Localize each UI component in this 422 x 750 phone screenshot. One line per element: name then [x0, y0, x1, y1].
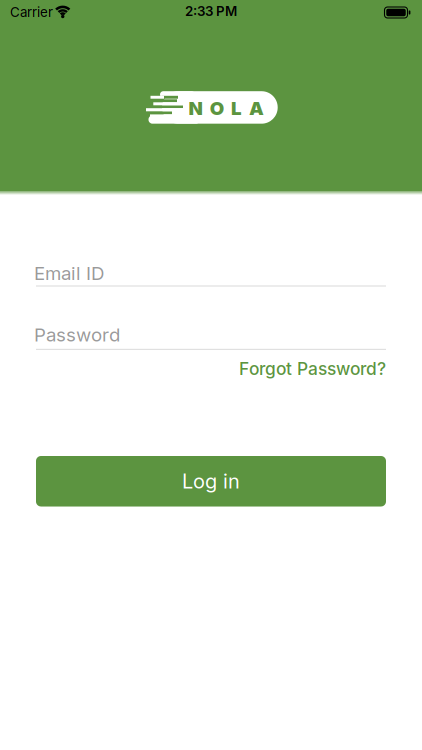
staticText: Email ID — [34, 262, 104, 284]
staticText: N — [188, 97, 202, 119]
staticText: Forgot Password? — [239, 358, 386, 379]
staticText: Carrier — [10, 4, 53, 20]
staticText: O — [210, 97, 224, 119]
button[interactable]: Email ID — [36, 262, 386, 288]
staticText: A — [249, 97, 264, 119]
staticText: L — [231, 97, 242, 119]
staticText: Log in — [182, 469, 240, 493]
button[interactable]: Log in — [36, 456, 386, 506]
staticText: 2:33 PM — [185, 3, 237, 19]
button[interactable]: Password — [36, 324, 386, 350]
staticText: Password — [34, 324, 120, 346]
button[interactable]: Forgot Password? — [239, 358, 386, 379]
